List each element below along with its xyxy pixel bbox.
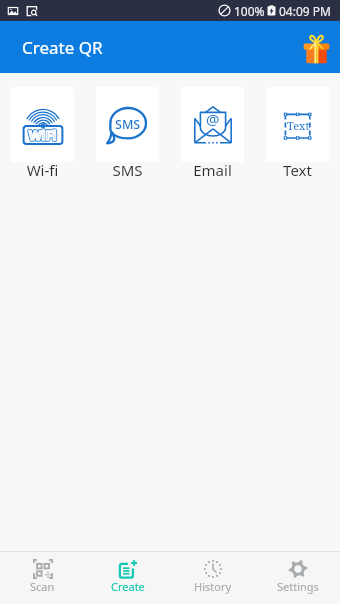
button[interactable]: Scan: [0, 552, 85, 604]
button[interactable]: Settings: [255, 552, 340, 604]
staticText: Scan: [30, 579, 55, 594]
staticText: Text: [266, 160, 329, 180]
staticText: Text: [287, 118, 310, 133]
staticText: Create: [111, 579, 145, 594]
staticText: SMS: [96, 160, 159, 180]
staticText: Wi-fi: [11, 160, 74, 180]
button[interactable]: History: [170, 552, 255, 604]
button[interactable]: @: [181, 87, 244, 182]
staticText: Email: [181, 160, 244, 180]
button[interactable]: Gift: [297, 28, 335, 66]
staticText: @: [206, 109, 220, 129]
staticText: SMS: [115, 116, 141, 133]
staticText: 04:09 PM: [279, 3, 331, 19]
staticText: WiFi: [29, 126, 57, 144]
staticText: Create QR: [22, 36, 103, 59]
button[interactable]: WiFi: [11, 87, 74, 182]
button[interactable]: Create: [85, 552, 170, 604]
button[interactable]: Text: [266, 87, 329, 182]
staticText: Settings: [277, 579, 319, 594]
staticText: 100%: [234, 3, 265, 19]
button[interactable]: SMS: [96, 87, 159, 182]
staticText: History: [194, 579, 232, 594]
staticText: WiFi: [29, 126, 57, 144]
